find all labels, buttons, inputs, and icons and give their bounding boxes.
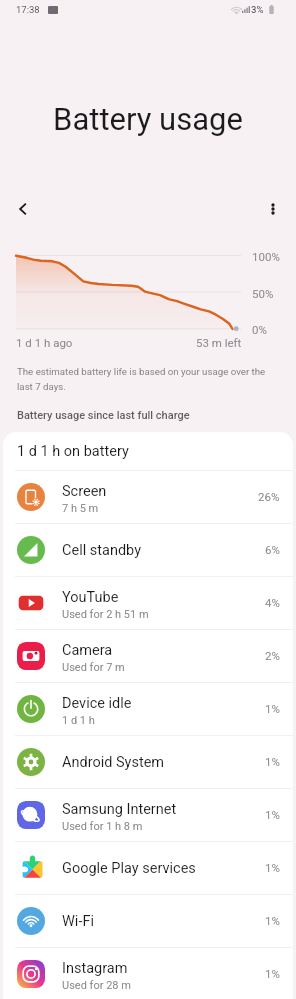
staticText: 0% bbox=[252, 323, 267, 336]
staticText: 4% bbox=[265, 596, 280, 609]
staticText: 1 d 1 h on battery bbox=[17, 443, 129, 460]
staticText: YouTube bbox=[62, 589, 119, 606]
staticText: Used for 1 h 8 m bbox=[62, 820, 143, 833]
staticText: 100% bbox=[252, 250, 280, 263]
staticText: Used for 7 m bbox=[62, 661, 125, 674]
staticText: Screen bbox=[62, 483, 107, 500]
staticText: 50% bbox=[252, 287, 274, 300]
staticText: 7 h 5 m bbox=[62, 502, 99, 515]
staticText: Device idle bbox=[62, 695, 132, 712]
button[interactable]: Android System bbox=[3, 736, 293, 788]
staticText: 3% bbox=[251, 4, 264, 15]
staticText: Samsung Internet bbox=[62, 801, 177, 818]
staticText: 1% bbox=[265, 755, 280, 768]
staticText: Cell standby bbox=[62, 542, 141, 559]
staticText: Google Play services bbox=[62, 860, 196, 877]
button[interactable]: Navigate up bbox=[8, 194, 38, 224]
staticText: Camera bbox=[62, 642, 113, 659]
button[interactable]: Samsung Internet bbox=[3, 789, 293, 841]
staticText: Battery usage bbox=[0, 101, 296, 137]
staticText: 1 d 1 h bbox=[62, 714, 95, 727]
staticText: 1% bbox=[265, 702, 280, 715]
button[interactable]: Screen bbox=[3, 471, 293, 523]
staticText: The estimated battery life is based on y… bbox=[17, 366, 275, 392]
button[interactable]: YouTube bbox=[3, 577, 293, 629]
button[interactable]: Google Play services bbox=[3, 842, 293, 894]
button[interactable]: Wi-Fi bbox=[3, 895, 293, 947]
staticText: Used for 2 h 51 m bbox=[62, 608, 149, 621]
button[interactable]: Instagram bbox=[3, 948, 293, 999]
button[interactable]: More options bbox=[258, 194, 288, 224]
staticText: 1 d 1 h ago bbox=[16, 336, 73, 349]
staticText: 53 m left bbox=[196, 336, 242, 349]
staticText: 1% bbox=[265, 967, 280, 980]
button[interactable]: Device idle bbox=[3, 683, 293, 735]
staticText: Android System bbox=[62, 754, 165, 771]
staticText: 17:38 bbox=[16, 4, 40, 15]
staticText: 2% bbox=[265, 649, 280, 662]
staticText: Used for 28 m bbox=[62, 979, 131, 992]
staticText: 26% bbox=[258, 490, 280, 503]
staticText: 1% bbox=[265, 861, 280, 874]
staticText: Instagram bbox=[62, 960, 128, 977]
button[interactable]: Cell standby bbox=[3, 524, 293, 576]
staticText: Battery usage since last full charge bbox=[17, 409, 190, 422]
button[interactable]: Camera bbox=[3, 630, 293, 682]
staticText: 1% bbox=[265, 914, 280, 927]
staticText: Wi-Fi bbox=[62, 913, 94, 930]
staticText: 1% bbox=[265, 808, 280, 821]
staticText: 6% bbox=[265, 543, 280, 556]
